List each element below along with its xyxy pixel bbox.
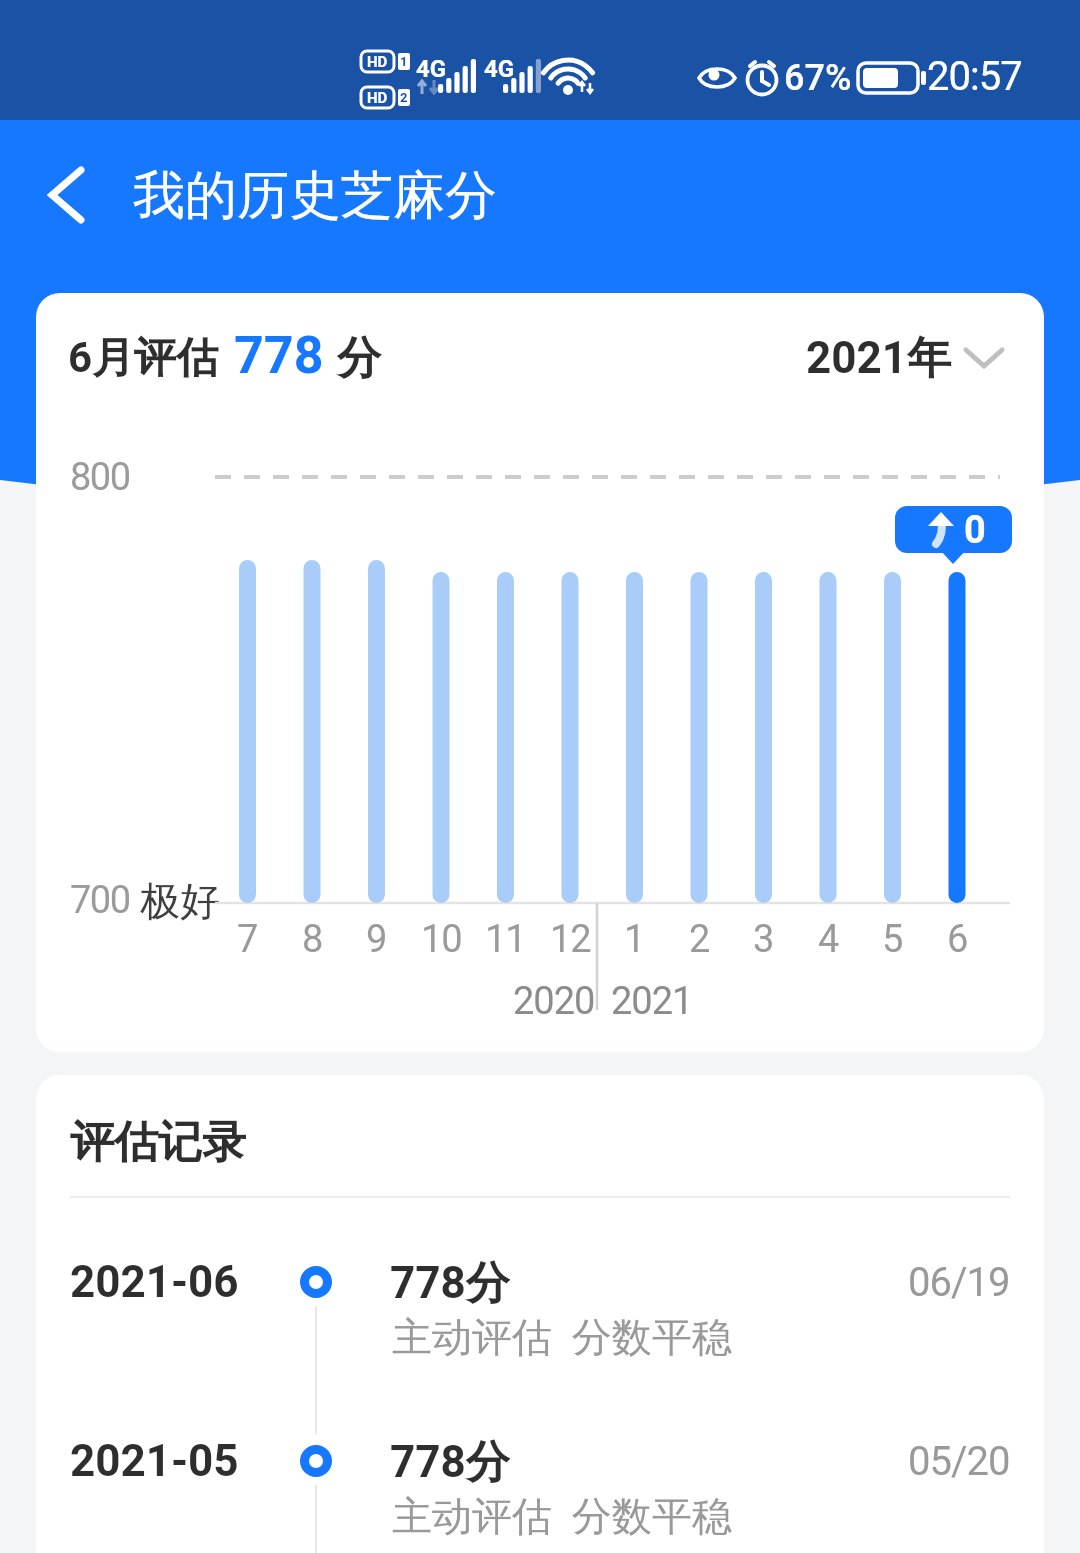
staticText: 2021年 — [806, 331, 951, 386]
staticText: HD — [367, 89, 388, 107]
staticText: 800 — [70, 455, 130, 500]
staticText: 6 — [947, 917, 968, 962]
staticText: 1 — [400, 54, 408, 69]
staticText: 10 — [421, 917, 462, 962]
staticText: 20:57 — [927, 53, 1022, 95]
staticText: 4G — [416, 55, 447, 83]
staticText: 11 — [485, 917, 526, 962]
staticText: 2021-05 — [70, 1435, 239, 1485]
staticText: 4G — [484, 55, 515, 83]
staticText: 2020 — [513, 979, 595, 1023]
staticText: 2 — [689, 917, 710, 962]
staticText: 778分 — [390, 1435, 510, 1485]
staticText: 06/19 — [908, 1259, 1010, 1306]
staticText: 极好 — [140, 876, 220, 924]
staticText: 分 — [337, 331, 381, 386]
staticText: 评估记录 — [70, 1115, 246, 1165]
staticText: 778 — [234, 325, 324, 386]
button[interactable]: 2021年 — [701, 323, 1011, 389]
staticText: 0 — [964, 508, 986, 553]
staticText: 7 — [237, 917, 258, 962]
staticText: 9 — [366, 917, 387, 962]
staticText: 05/20 — [908, 1438, 1010, 1485]
staticText: 主动评估 分数平稳 — [392, 1312, 732, 1362]
button[interactable] — [30, 158, 102, 232]
staticText: 2021 — [611, 979, 693, 1023]
button[interactable]: 2021-05 — [36, 1404, 1044, 1553]
staticText: 8 — [302, 917, 323, 962]
staticText: 2021-06 — [70, 1256, 239, 1306]
staticText: 2 — [400, 90, 408, 105]
staticText: 3 — [753, 917, 774, 962]
staticText: 我的历史芝麻分 — [133, 163, 497, 227]
staticText: 6月评估 — [68, 332, 219, 385]
staticText: HD — [367, 53, 388, 71]
staticText: 4 — [818, 917, 839, 962]
staticText: 778分 — [390, 1256, 510, 1306]
button[interactable]: 2021-06 — [36, 1225, 1044, 1395]
staticText: 1 — [624, 917, 645, 962]
staticText: 主动评估 分数平稳 — [392, 1491, 732, 1541]
staticText: 5 — [882, 917, 903, 962]
staticText: 12 — [550, 917, 591, 962]
staticText: 700 — [70, 878, 130, 923]
staticText: 67% — [784, 57, 852, 99]
